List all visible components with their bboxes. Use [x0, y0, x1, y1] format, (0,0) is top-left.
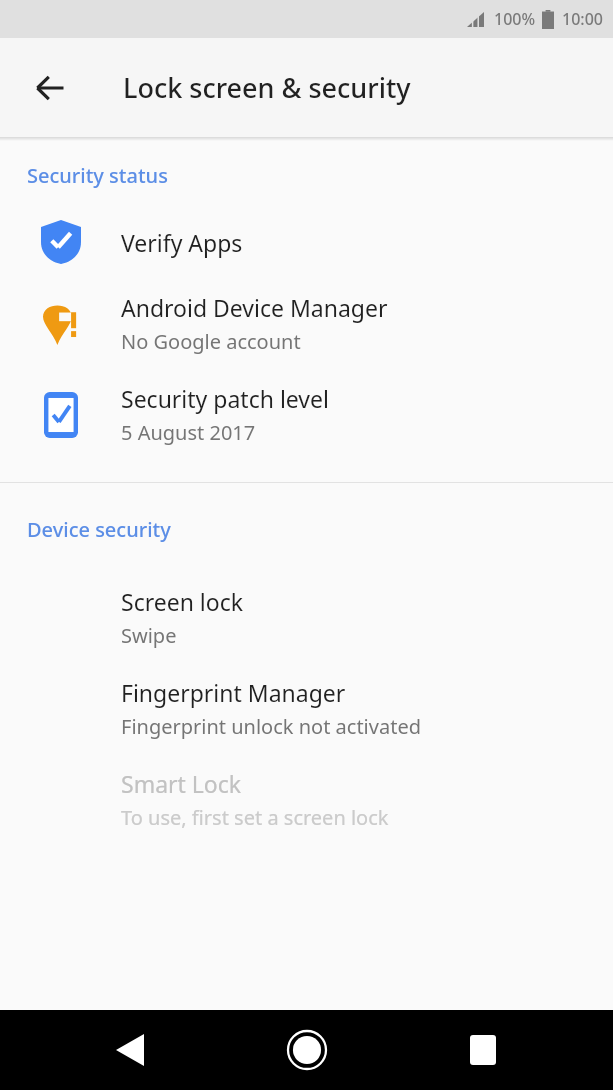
button[interactable]: Verify Apps [0, 206, 613, 278]
staticText: Verify Apps [121, 227, 243, 258]
staticText: Smart Lock [121, 768, 242, 799]
staticText: 100% [494, 8, 536, 30]
staticText: Fingerprint Manager [121, 677, 346, 708]
staticText: No Google account [121, 328, 301, 355]
staticText: 5 August 2017 [121, 419, 256, 446]
staticText: Fingerprint unlock not activated [121, 713, 421, 740]
staticText: Device security [27, 516, 171, 543]
button[interactable]: Recent apps [453, 1020, 513, 1080]
button[interactable]: Fingerprint Manager [0, 663, 613, 754]
button[interactable]: Smart Lock [0, 754, 613, 845]
staticText: To use, first set a screen lock [121, 804, 389, 831]
staticText: Swipe [121, 622, 177, 649]
button[interactable]: Security patch level [0, 369, 613, 460]
staticText: Security patch level [121, 383, 329, 414]
staticText: Security status [27, 162, 168, 189]
button[interactable]: Back [100, 1020, 160, 1080]
button[interactable]: Android Device Manager [0, 278, 613, 369]
staticText: Screen lock [121, 586, 244, 617]
staticText: Android Device Manager [121, 292, 388, 323]
button[interactable]: Back [17, 55, 83, 121]
staticText: 10:00 [562, 8, 603, 30]
button[interactable]: Home [275, 1018, 339, 1082]
staticText: Lock screen & security [123, 69, 411, 106]
button[interactable]: Screen lock [0, 572, 613, 663]
